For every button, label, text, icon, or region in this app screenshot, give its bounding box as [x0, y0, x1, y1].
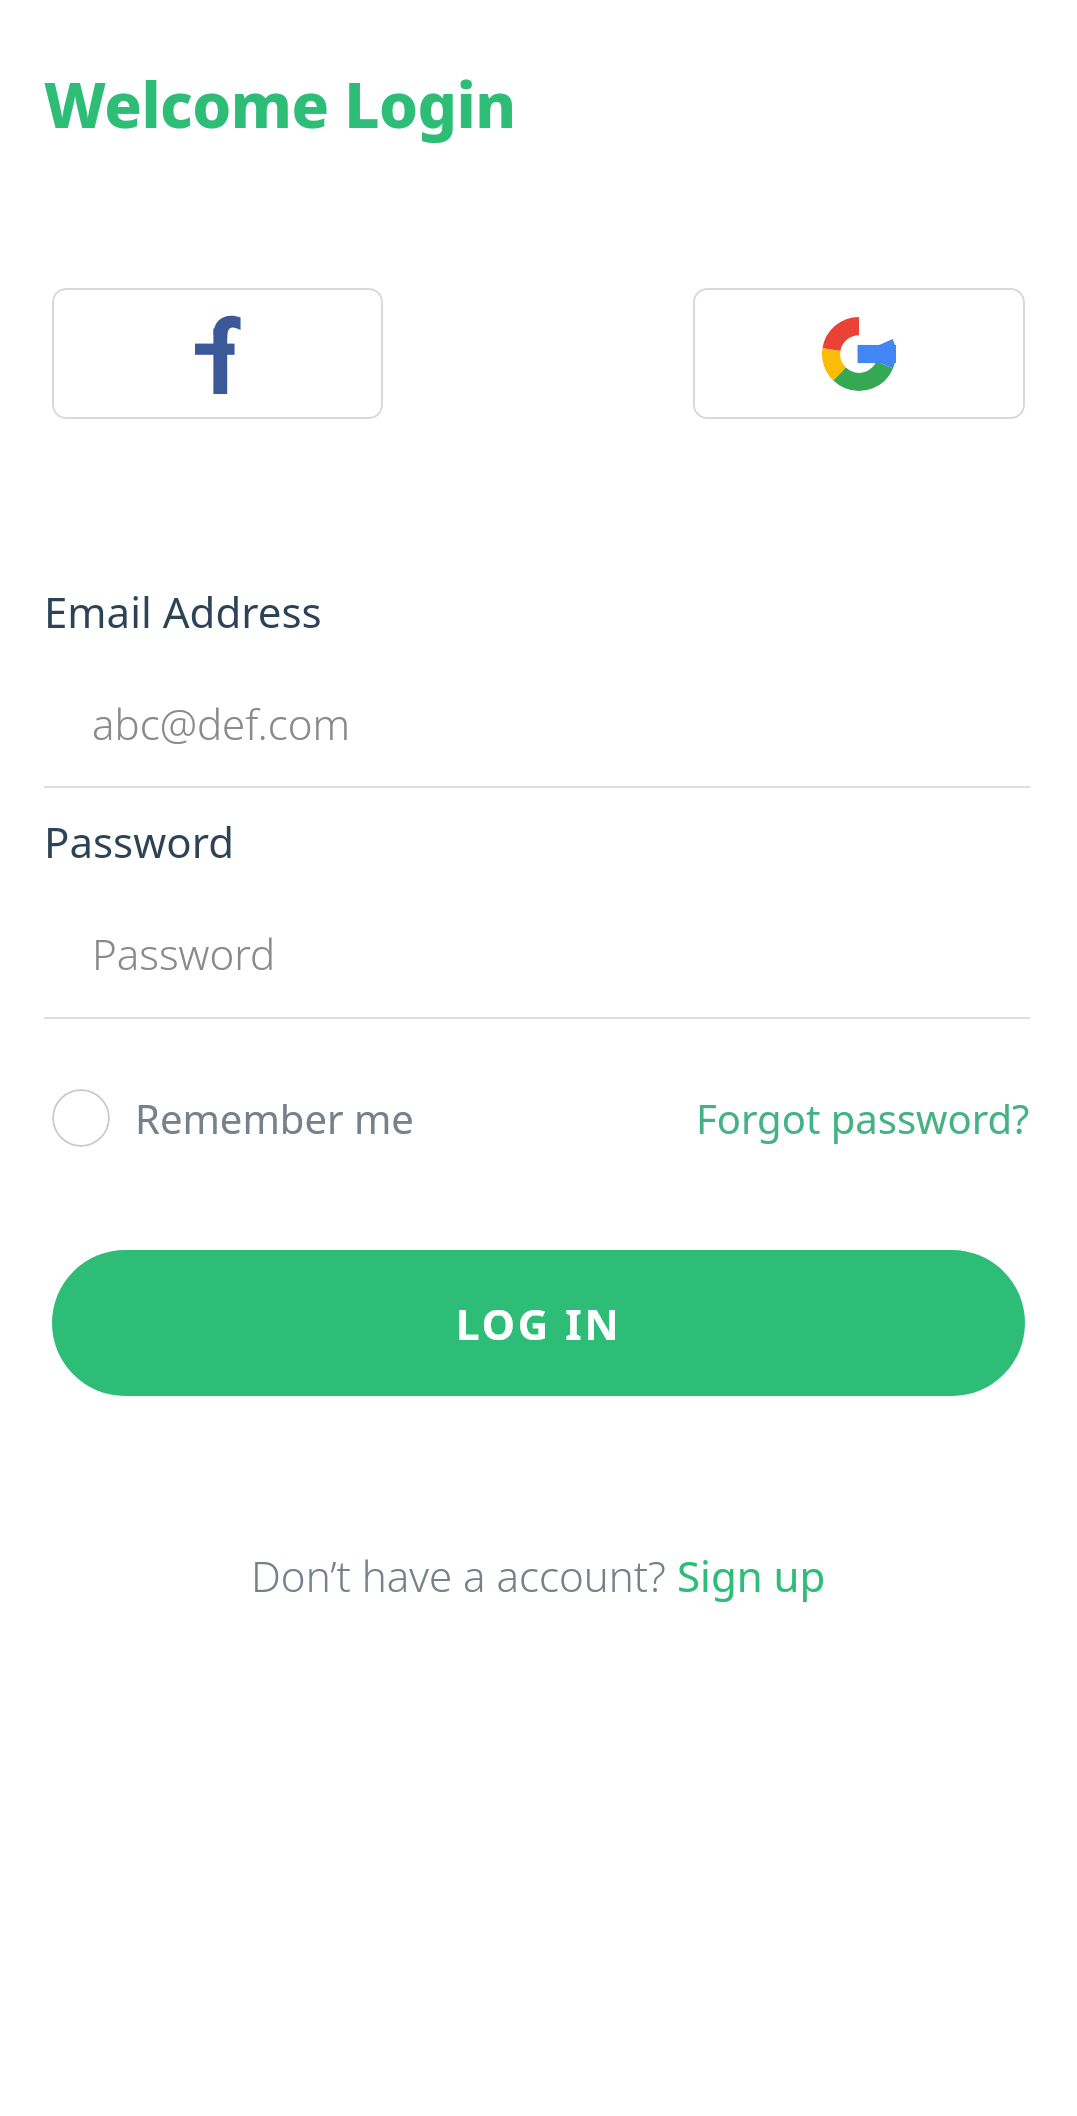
button[interactable]: LOG IN: [52, 1250, 1025, 1396]
button[interactable]: Forgot password?: [696, 1080, 1030, 1156]
staticText: Sign up: [677, 1547, 826, 1604]
staticText: Email Address: [44, 583, 322, 640]
button[interactable]: Password: [44, 870, 1030, 1018]
button[interactable]: Sign in with Facebook: [52, 288, 383, 419]
staticText: Remember me: [135, 1091, 414, 1145]
staticText: Welcome Login: [44, 62, 516, 146]
staticText: Forgot password?: [696, 1091, 1030, 1145]
button[interactable]: Sign up: [677, 1547, 826, 1604]
staticText: Don’t have a account?: [251, 1547, 677, 1604]
staticText: Password: [92, 925, 276, 982]
staticText: LOG IN: [456, 1295, 622, 1352]
button[interactable]: Remember me: [44, 1080, 414, 1156]
button[interactable]: Sign in with Google: [693, 288, 1025, 419]
button[interactable]: abc@def.com: [44, 640, 1030, 788]
staticText: abc@def.com: [92, 695, 350, 752]
staticText: Password: [44, 813, 234, 870]
